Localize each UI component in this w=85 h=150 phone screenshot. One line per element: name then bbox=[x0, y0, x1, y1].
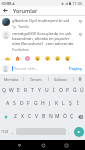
button[interactable]: O bbox=[57, 84, 64, 97]
button[interactable]: Backspace bbox=[75, 110, 85, 123]
button[interactable]: K bbox=[53, 97, 60, 110]
staticText: 1y Yanıtla bbox=[12, 24, 29, 29]
staticText: P bbox=[66, 87, 70, 94]
staticText: Kullanıcı bbox=[54, 77, 68, 82]
button[interactable]: Emoji bbox=[24, 55, 31, 62]
staticText: Merhaba bbox=[4, 77, 19, 82]
staticText: H bbox=[41, 100, 45, 107]
button[interactable]: Tamam bbox=[24, 74, 48, 84]
button[interactable]: gfbarbie Oyd muhteşem bi vid bbox=[0, 16, 85, 29]
staticText: gfbarbie Oyd muhteşem bi vid bbox=[12, 18, 70, 23]
staticText: B bbox=[42, 113, 46, 120]
button[interactable]: D bbox=[18, 97, 25, 110]
staticText: Yorum ekle… bbox=[14, 66, 39, 71]
button[interactable]: Like bbox=[77, 18, 83, 24]
staticText: V bbox=[35, 113, 39, 120]
button[interactable]: N bbox=[47, 110, 54, 123]
button[interactable]: R bbox=[22, 84, 29, 97]
staticText: L bbox=[62, 100, 65, 107]
button[interactable]: U bbox=[43, 84, 50, 97]
button[interactable]: Y bbox=[36, 84, 43, 97]
button[interactable]: Back bbox=[0, 6, 11, 15]
button[interactable]: W bbox=[8, 84, 15, 97]
button[interactable]: C bbox=[26, 110, 33, 123]
staticText: Postlarken bbox=[12, 47, 29, 52]
button[interactable]: İ bbox=[50, 84, 57, 97]
staticText: O bbox=[59, 87, 63, 94]
staticText: Ç bbox=[70, 113, 74, 120]
button[interactable]: İ bbox=[74, 97, 81, 110]
staticText: Y bbox=[38, 87, 41, 94]
staticText: ?123 bbox=[1, 129, 9, 134]
button[interactable]: , bbox=[10, 125, 16, 138]
staticText: W bbox=[9, 87, 14, 94]
button[interactable]: B bbox=[40, 110, 47, 123]
button[interactable]: Merhaba bbox=[0, 74, 23, 84]
staticText: C bbox=[28, 113, 32, 120]
button[interactable]: Voice input bbox=[74, 74, 85, 84]
button[interactable]: L bbox=[60, 97, 67, 110]
button[interactable]: V bbox=[33, 110, 40, 123]
button[interactable]: Like bbox=[77, 31, 83, 37]
button[interactable]: Paylaş bbox=[68, 64, 83, 74]
staticText: Ö bbox=[63, 113, 67, 120]
button[interactable]: S bbox=[11, 97, 18, 110]
staticText: Q bbox=[2, 87, 6, 94]
button[interactable]: Ü bbox=[78, 84, 85, 97]
button[interactable]: X bbox=[19, 110, 26, 123]
button[interactable]: Emoji bbox=[64, 55, 71, 62]
staticText: . bbox=[68, 129, 70, 135]
staticText: D bbox=[20, 100, 24, 107]
button[interactable]: J bbox=[46, 97, 53, 110]
button[interactable]: Emoji bbox=[44, 55, 51, 62]
button[interactable]: Shift bbox=[0, 110, 11, 123]
staticText: M bbox=[55, 113, 60, 120]
staticText: T bbox=[31, 87, 34, 94]
staticText: J bbox=[49, 100, 51, 107]
staticText: Ü bbox=[80, 87, 84, 94]
button[interactable]: . bbox=[66, 125, 72, 138]
button[interactable]: ?123 bbox=[0, 125, 10, 138]
button[interactable]: P bbox=[64, 84, 71, 97]
staticText: 17:06 bbox=[72, 1, 83, 6]
button[interactable]: G bbox=[32, 97, 39, 110]
button[interactable]: E bbox=[15, 84, 22, 97]
button[interactable]: Kullanıcı bbox=[49, 74, 73, 84]
button[interactable]: Ç bbox=[68, 110, 75, 123]
staticText: X bbox=[21, 113, 24, 120]
staticText: , bbox=[12, 129, 14, 135]
staticText: A bbox=[6, 100, 10, 107]
button[interactable]: Emoji bbox=[4, 55, 11, 62]
button[interactable]: M bbox=[54, 110, 61, 123]
button[interactable]: Back bbox=[14, 140, 24, 150]
button[interactable]: Q bbox=[0, 84, 8, 97]
staticText: G bbox=[34, 100, 38, 107]
button[interactable]: H bbox=[39, 97, 46, 110]
staticText: cemalgul000 Sonuçlarda en çok kazandıran… bbox=[12, 31, 76, 46]
staticText: Yorumlar bbox=[13, 7, 38, 14]
button[interactable]: Emoji bbox=[14, 55, 21, 62]
staticText: Z bbox=[14, 113, 17, 120]
button[interactable]: F bbox=[25, 97, 32, 110]
staticText: Ğ bbox=[73, 87, 77, 94]
button[interactable]: Emoji bbox=[34, 55, 41, 62]
staticText: U bbox=[45, 87, 49, 94]
button[interactable]: Emoji bbox=[54, 55, 61, 62]
button[interactable]: Ş bbox=[67, 97, 74, 110]
staticText: Ş bbox=[69, 100, 72, 107]
button[interactable]: Ö bbox=[61, 110, 68, 123]
button[interactable]: A bbox=[4, 97, 11, 110]
button[interactable]: Ğ bbox=[71, 84, 78, 97]
button[interactable]: cemalgul000 Sonuçlarda en çok kazandıran… bbox=[0, 29, 85, 53]
button[interactable]: Send bbox=[74, 127, 84, 137]
button[interactable]: T bbox=[29, 84, 36, 97]
button[interactable]: Recent apps bbox=[61, 140, 71, 150]
staticText: N bbox=[49, 113, 53, 120]
button[interactable]: Z bbox=[11, 110, 19, 123]
button[interactable]: Home bbox=[38, 140, 48, 150]
staticText: Paylaş bbox=[69, 66, 82, 72]
staticText: R bbox=[24, 87, 28, 94]
staticText: Tamam bbox=[30, 77, 42, 82]
staticText: K bbox=[55, 100, 59, 107]
